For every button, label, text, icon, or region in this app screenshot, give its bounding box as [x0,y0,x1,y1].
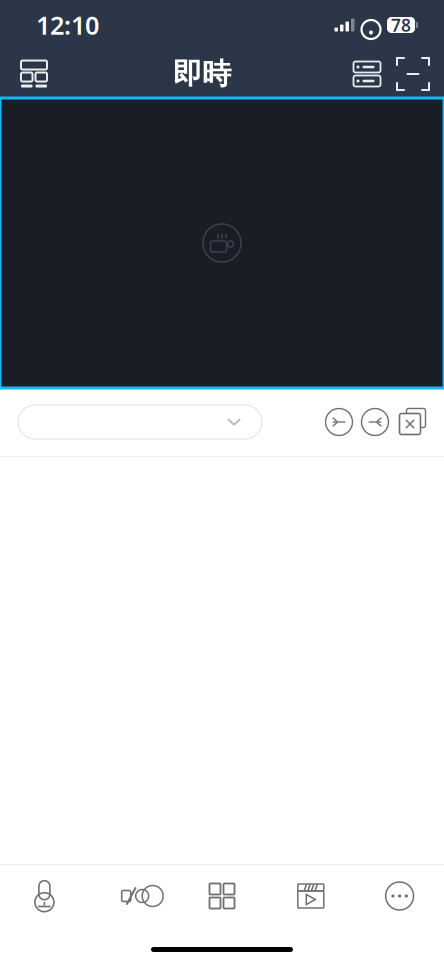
button[interactable]: Playback [266,865,355,927]
button[interactable]: Device list [344,50,390,98]
button[interactable]: Scan [390,50,436,98]
button[interactable]: Select channel [18,405,262,439]
button[interactable]: Audio [89,865,178,927]
button[interactable]: Next [359,406,391,438]
button[interactable]: Microphone [0,865,89,927]
staticText: 78 [391,13,411,36]
button[interactable]: Close all [397,407,427,437]
button[interactable]: Layout grid [178,865,266,927]
button[interactable]: More [355,865,444,927]
button[interactable]: Previous [323,406,355,438]
button[interactable]: Layout [8,50,60,98]
staticText: 12:10 [36,8,99,42]
staticText: 即時 [173,56,231,92]
